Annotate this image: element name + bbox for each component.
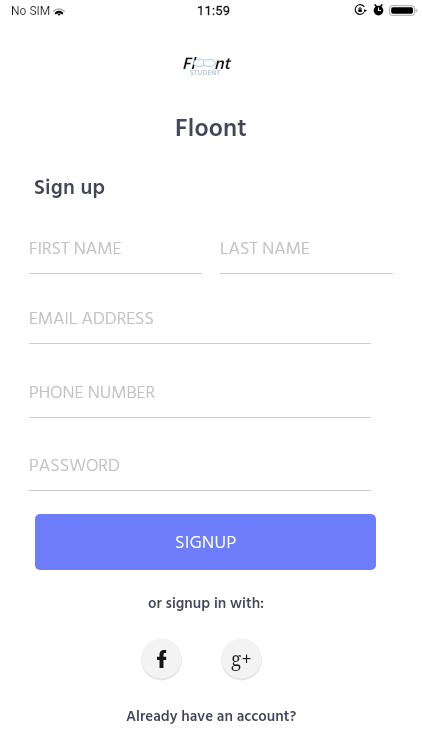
staticText: Floont [175,110,248,150]
staticText: 11:59 [197,3,231,18]
staticText: LAST NAME [220,235,310,264]
staticText: EMAIL ADDRESS [29,305,155,334]
staticText: Sign up [34,172,106,206]
button[interactable]: PHONE NUMBER [29,379,371,419]
staticText: PASSWORD [29,452,120,481]
button[interactable]: EMAIL ADDRESS [29,305,371,345]
button[interactable]: Sign up with Google Plus [221,638,262,679]
button[interactable]: PASSWORD [29,452,371,492]
staticText: No SIM [11,4,51,18]
button[interactable]: FIRST NAME [29,235,202,275]
staticText: PHONE NUMBER [29,379,155,408]
staticText: FIRST NAME [29,235,122,264]
staticText: or signup in with: [148,592,265,616]
button[interactable]: SIGNUP [35,514,376,570]
staticText: Fl [182,51,195,78]
staticText: g+ [231,646,252,672]
staticText: STUDENT [190,68,221,79]
button[interactable]: LAST NAME [220,235,393,275]
staticText: nt [214,51,231,78]
button[interactable]: Already have an account? [126,705,297,729]
staticText: SIGNUP [175,529,237,558]
button[interactable]: Sign up with Facebook [141,638,182,679]
